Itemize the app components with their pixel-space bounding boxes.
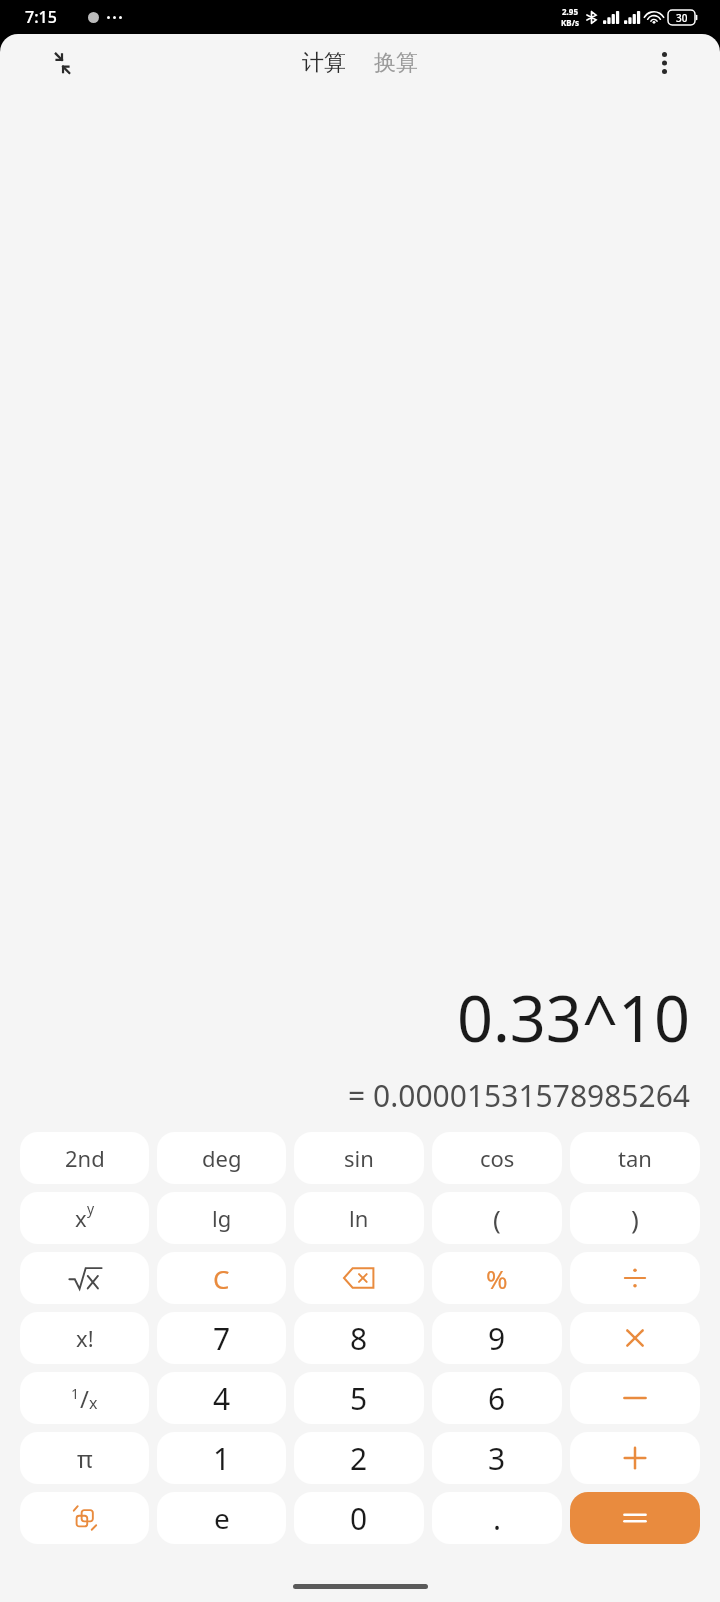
- button[interactable]: Backspace: [294, 1252, 424, 1304]
- button[interactable]: 7: [157, 1312, 286, 1364]
- button[interactable]: 3: [432, 1432, 562, 1484]
- staticText: deg: [202, 1143, 242, 1173]
- staticText: 7: [213, 1318, 231, 1359]
- staticText: /: [80, 1382, 89, 1415]
- staticText: 7:15: [25, 6, 57, 28]
- staticText: (: [493, 1201, 501, 1236]
- button[interactable]: Multiply: [570, 1312, 700, 1364]
- button[interactable]: Divide: [570, 1252, 700, 1304]
- button[interactable]: 0: [294, 1492, 424, 1544]
- button[interactable]: (: [432, 1192, 562, 1244]
- staticText: cos: [480, 1143, 515, 1173]
- staticText: x: [75, 1203, 87, 1233]
- staticText: 6: [488, 1378, 506, 1419]
- staticText: 1: [213, 1438, 231, 1479]
- staticText: 30: [676, 11, 688, 25]
- button[interactable]: e: [157, 1492, 286, 1544]
- staticText: 4: [213, 1378, 231, 1419]
- button[interactable]: 换算: [368, 43, 424, 83]
- button[interactable]: Collapse: [40, 41, 84, 85]
- button[interactable]: 2: [294, 1432, 424, 1484]
- staticText: π: [77, 1442, 93, 1475]
- button[interactable]: 5: [294, 1372, 424, 1424]
- button[interactable]: lg: [157, 1192, 286, 1244]
- button[interactable]: 8: [294, 1312, 424, 1364]
- button[interactable]: 9: [432, 1312, 562, 1364]
- button[interactable]: C: [157, 1252, 286, 1304]
- button[interactable]: x!: [20, 1312, 149, 1364]
- staticText: %: [486, 1261, 508, 1296]
- button[interactable]: ln: [294, 1192, 424, 1244]
- button[interactable]: tan: [570, 1132, 700, 1184]
- button[interactable]: x to the power y: [20, 1192, 149, 1244]
- staticText: e: [214, 1499, 230, 1537]
- staticText: C: [213, 1261, 230, 1296]
- staticText: ln: [349, 1203, 369, 1233]
- button[interactable]: Plus: [570, 1432, 700, 1484]
- button[interactable]: .: [432, 1492, 562, 1544]
- staticText: 2: [350, 1438, 368, 1479]
- button[interactable]: π: [20, 1432, 149, 1484]
- staticText: 8: [350, 1318, 368, 1359]
- staticText: ): [631, 1201, 639, 1236]
- staticText: 5: [350, 1378, 368, 1419]
- staticText: 换算: [374, 49, 418, 77]
- button[interactable]: Unit conversion: [20, 1492, 149, 1544]
- staticText: 1: [71, 1384, 80, 1403]
- staticText: x!: [76, 1323, 94, 1353]
- staticText: = 0.00001531578985264: [30, 1075, 690, 1116]
- button[interactable]: 2nd: [20, 1132, 149, 1184]
- button[interactable]: More options: [644, 43, 684, 83]
- button[interactable]: sin: [294, 1132, 424, 1184]
- staticText: KB/s: [561, 17, 579, 28]
- button[interactable]: One over x: [20, 1372, 149, 1424]
- button[interactable]: 1: [157, 1432, 286, 1484]
- staticText: .: [493, 1498, 502, 1539]
- button[interactable]: cos: [432, 1132, 562, 1184]
- button[interactable]: Minus: [570, 1372, 700, 1424]
- staticText: y: [87, 1199, 95, 1218]
- button[interactable]: Equals: [570, 1492, 700, 1544]
- staticText: lg: [212, 1203, 232, 1233]
- staticText: tan: [618, 1143, 652, 1173]
- button[interactable]: Percent: [432, 1252, 562, 1304]
- button[interactable]: 计算: [296, 43, 352, 83]
- button[interactable]: 6: [432, 1372, 562, 1424]
- staticText: 9: [488, 1318, 506, 1359]
- staticText: 0: [350, 1498, 368, 1539]
- staticText: 计算: [302, 49, 346, 77]
- staticText: 0.33^10: [30, 975, 690, 1061]
- staticText: 2nd: [65, 1143, 105, 1173]
- button[interactable]: Square root: [20, 1252, 149, 1304]
- button[interactable]: 4: [157, 1372, 286, 1424]
- staticText: 2.95: [562, 6, 578, 17]
- button[interactable]: ): [570, 1192, 700, 1244]
- staticText: sin: [344, 1143, 374, 1173]
- staticText: x: [89, 1392, 98, 1414]
- staticText: 3: [488, 1438, 506, 1479]
- button[interactable]: deg: [157, 1132, 286, 1184]
